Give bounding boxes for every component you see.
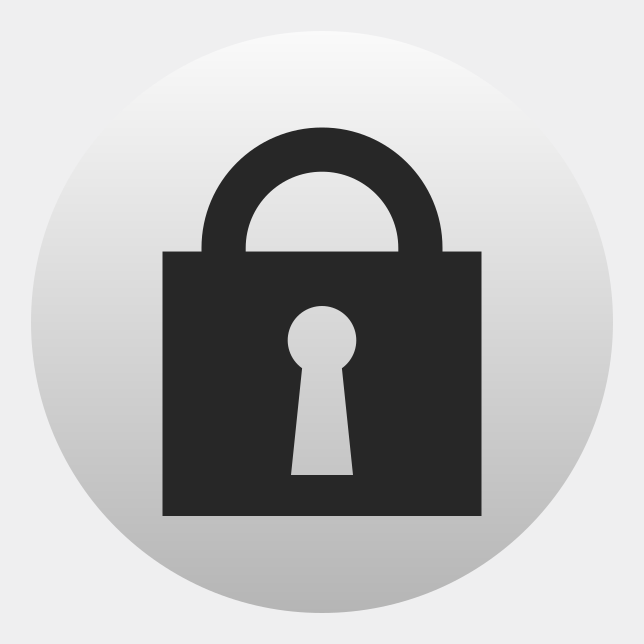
button[interactable]: Locked	[0, 0, 644, 644]
